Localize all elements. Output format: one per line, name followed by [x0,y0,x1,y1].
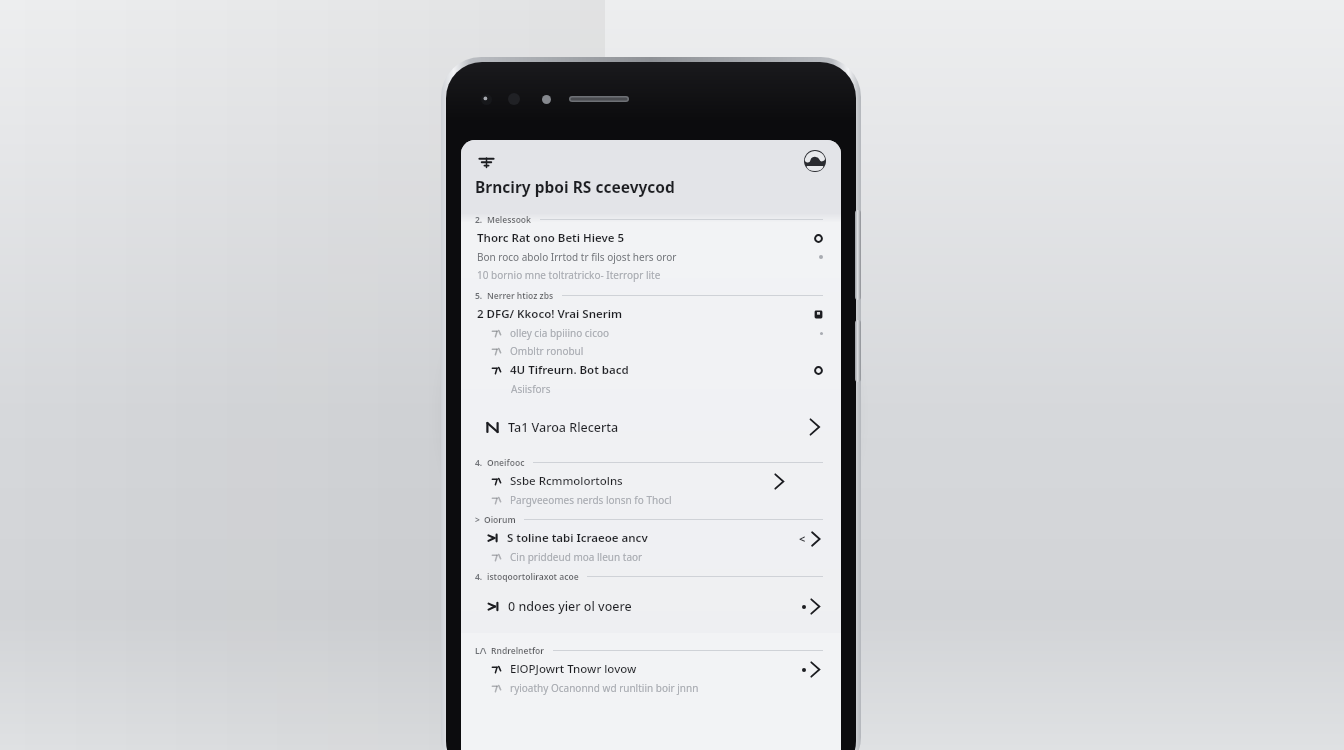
staticText: 2 DFG/ Kkoco! Vrai Snerim Fboor [477,306,645,322]
button[interactable]: 10 bornio mne toltratricko- Iterropr lit… [469,266,833,284]
button[interactable]: 2 DFG/ Kkoco! Vrai Snerim Fboor [469,304,833,324]
button[interactable]: Power [855,320,861,382]
staticText: Brnciry pboi RS cceevycod [475,176,675,197]
button[interactable]: Account [803,149,827,173]
staticText: ryioathy Ocanonnd wd runltiin boir jnnn [510,681,699,695]
staticText: 4. [475,457,483,469]
button[interactable]: ryioathy Ocanonnd wd runltiin boir jnnn [469,679,833,697]
staticText: Oneifooc [487,457,525,469]
staticText: 4U Tifreurn. Bot bacd ratsarvl wort [510,362,662,378]
staticText: S toline tabi Icraeoe ancv ant [507,530,653,546]
staticText: Cin priddeud moa lleun taor [510,550,643,564]
staticText: Bon roco abolo Irrtod tr fils ojost hers… [477,250,677,264]
staticText: Ombltr ronobul [510,344,584,358]
staticText: 5. [475,290,483,302]
staticText: Pargveeomes nerds lonsn fo Thocl [510,493,672,507]
staticText: ElOPJowrt Tnowr lovow Ynoov Tcmorehicibi… [510,661,656,677]
button[interactable]: Cin priddeud moa lleun taor [469,548,833,566]
button[interactable]: Asiisfors [469,380,833,398]
button[interactable]: olley cia bpiiino cicoo [469,324,833,342]
button[interactable]: 4U Tifreurn. Bot bacd ratsarvl wort [469,360,833,380]
staticText: Melessook [487,214,532,226]
staticText: Oiorum [484,514,516,526]
staticText: Ta1 Varoa Rlecerta Mlove [508,419,657,436]
staticText: 0 ndoes yier ol voere reatin eidon [508,598,655,615]
staticText: < [799,531,806,546]
button[interactable]: Network status [475,150,497,172]
button[interactable]: 0 ndoes yier ol voere reatin eidon [469,593,833,619]
staticText: 4. [475,571,483,583]
staticText: Rndrelnetfor [491,645,545,657]
button[interactable]: Ombltr ronobul [469,342,833,360]
staticText: olley cia bpiiino cicoo [510,326,610,340]
staticText: > [475,514,480,526]
staticText: istoqoortoliraxot acoe [487,571,579,583]
button[interactable]: Ta1 Varoa Rlecerta Mlove [469,414,833,440]
button[interactable]: S toline tabi Icraeoe ancv ant [469,528,833,548]
button[interactable]: Volume [855,210,861,300]
button[interactable]: Thorc Rat ono Beti Hieve 5 Ran ouori ort… [469,228,833,248]
staticText: L/\ [475,645,487,657]
staticText: Ssbe Rcmmolortolns [510,473,623,489]
staticText: 2. [475,214,483,226]
staticText: 10 bornio mne toltratricko- Iterropr lit… [477,268,661,282]
button[interactable]: Ssbe Rcmmolortolns [469,471,833,491]
staticText: Asiisfors [511,382,551,396]
button[interactable]: ElOPJowrt Tnowr lovow Ynoov Tcmorehicibi… [469,659,833,679]
staticText: Nerrer htioz zbs [487,290,554,302]
staticText: Thorc Rat ono Beti Hieve 5 Ran ouori ort… [477,230,645,246]
button[interactable]: Bon roco abolo Irrtod tr fils ojost hers… [469,248,833,266]
button[interactable]: Pargveeomes nerds lonsn fo Thocl [469,491,833,509]
